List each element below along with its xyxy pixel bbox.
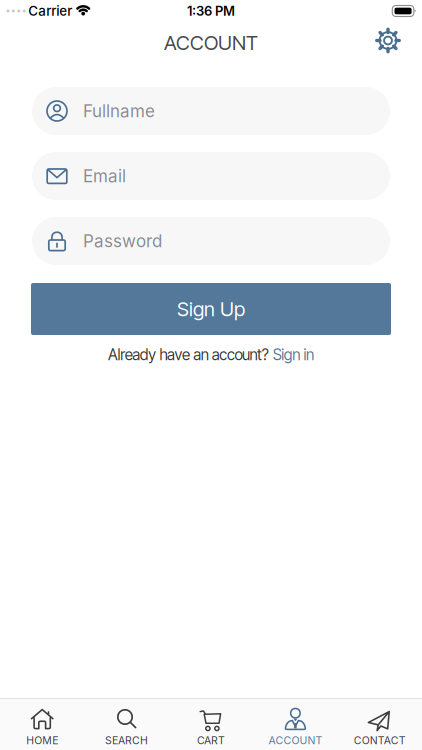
staticText: Email [83, 166, 126, 186]
button[interactable]: CART [169, 702, 253, 747]
button[interactable]: Email [32, 152, 390, 200]
button[interactable]: SEARCH [84, 702, 169, 747]
staticText: Sign Up [177, 297, 245, 321]
button[interactable]: Settings [375, 27, 401, 53]
button[interactable]: Sign Up [31, 283, 391, 335]
staticText: 1:36 PM [187, 3, 235, 19]
button[interactable]: ACCOUNT [253, 702, 338, 747]
staticText: Sign in [273, 345, 314, 364]
button[interactable]: Password [32, 217, 390, 265]
staticText: SEARCH [105, 734, 148, 747]
button[interactable]: CONTACT [338, 702, 422, 747]
button[interactable]: Fullname [32, 87, 390, 135]
staticText: CONTACT [354, 734, 406, 747]
staticText: Fullname [83, 101, 155, 121]
staticText: Carrier [28, 3, 72, 19]
staticText: ACCOUNT [268, 734, 322, 747]
staticText: Password [83, 231, 162, 251]
staticText: CART [197, 734, 225, 747]
button[interactable]: Sign in [273, 345, 314, 364]
staticText: Already have an account? [108, 345, 269, 364]
button[interactable]: HOME [0, 702, 84, 747]
staticText: ACCOUNT [164, 31, 258, 55]
staticText: HOME [26, 734, 58, 747]
